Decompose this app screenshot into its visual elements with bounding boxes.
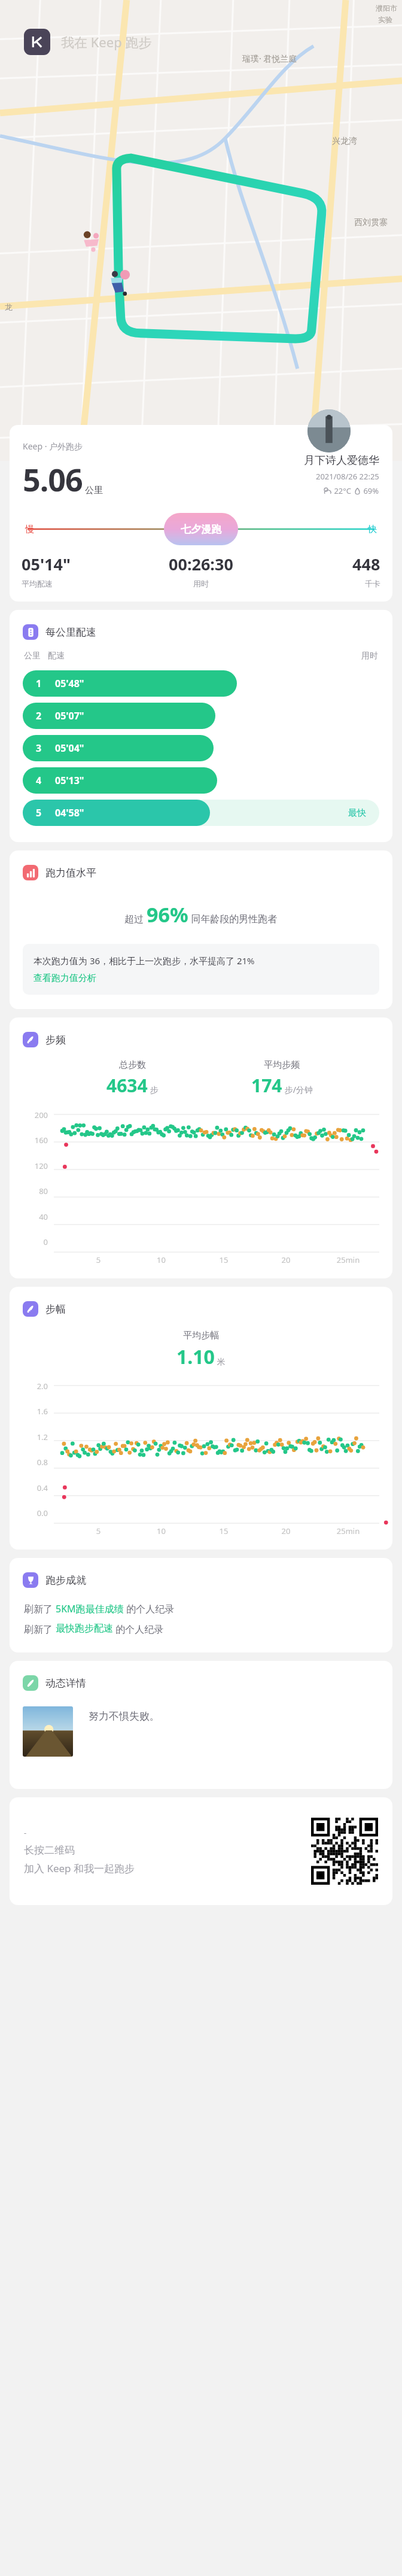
staticText: 0: [20, 1237, 48, 1247]
staticText: 跑步成就: [45, 1574, 86, 1587]
staticText: 平均步幅: [183, 1330, 219, 1341]
button[interactable]: 4: [23, 767, 379, 794]
staticText: 20: [255, 1526, 317, 1536]
button[interactable]: 刷新了: [24, 1602, 175, 1615]
staticText: 4: [36, 774, 42, 787]
other: 步幅: [23, 1301, 38, 1317]
button[interactable]: 刷新了: [24, 1623, 164, 1636]
staticText: 努力不惧失败。: [89, 1710, 160, 1723]
staticText: 平均步频: [264, 1059, 300, 1071]
button[interactable]: 5: [23, 800, 379, 826]
button[interactable]: 3: [23, 735, 379, 761]
staticText: 40: [20, 1211, 48, 1222]
staticText: 千卡: [365, 579, 380, 588]
staticText: 25min: [317, 1526, 379, 1536]
staticText: 25min: [317, 1254, 379, 1265]
staticText: 步频: [45, 1034, 66, 1046]
other: 步频: [23, 1032, 38, 1047]
staticText: 平均配速: [22, 579, 53, 588]
staticText: 5: [36, 806, 42, 819]
staticText: 配速: [48, 651, 65, 661]
staticText: 1: [36, 677, 42, 690]
button[interactable]: QR code: [311, 1818, 378, 1885]
staticText: 濮阳市: [376, 4, 397, 13]
staticText: 80: [20, 1186, 48, 1196]
staticText: 最快: [348, 807, 366, 819]
staticText: 05'04": [55, 742, 84, 755]
staticText: 3: [36, 742, 42, 755]
staticText: 七夕漫跑: [181, 523, 221, 536]
other: 跑步成就: [23, 1572, 38, 1588]
staticText: 步幅: [45, 1303, 66, 1316]
staticText: 加入 Keep 和我一起跑步: [24, 1861, 135, 1875]
staticText: 总步数: [119, 1059, 146, 1071]
staticText: 5: [67, 1526, 130, 1536]
staticText: 米: [215, 1356, 226, 1367]
button[interactable]: 动态详情: [23, 1675, 392, 1691]
staticText: 西刘贯寨: [354, 217, 388, 228]
staticText: 用时: [193, 579, 209, 588]
staticText: 每公里配速: [45, 626, 96, 639]
staticText: 实验: [378, 15, 392, 24]
staticText: 刷新了: [24, 1623, 56, 1636]
button[interactable]: 1: [23, 670, 379, 697]
other: 动态详情: [23, 1675, 38, 1691]
staticText: 最快跑步配速: [56, 1623, 113, 1635]
staticText: 96%: [147, 901, 188, 928]
staticText: 刷新了: [24, 1602, 56, 1615]
staticText: 月下诗人爱德华: [304, 454, 379, 467]
staticText: 1.10: [176, 1344, 215, 1370]
staticText: 174: [251, 1073, 282, 1098]
staticText: 00:26:30: [169, 553, 233, 575]
staticText: 快: [368, 524, 377, 535]
staticText: 10: [130, 1254, 193, 1265]
staticText: 我在 Keep 跑步: [61, 33, 152, 51]
staticText: 1.2: [20, 1432, 48, 1442]
staticText: 2021/08/26 22:25: [316, 471, 379, 482]
staticText: 2: [36, 709, 42, 722]
staticText: 05'13": [55, 774, 84, 787]
button[interactable]: 步幅: [23, 1301, 392, 1317]
staticText: 同年龄段的男性跑者: [188, 912, 278, 925]
staticText: 公里: [85, 485, 103, 496]
staticText: 15: [193, 1254, 255, 1265]
staticText: 瑞璞· 君悦兰庭: [242, 53, 297, 64]
staticText: 用时: [361, 651, 378, 661]
staticText: 22°C: [332, 485, 354, 496]
staticText: 本次跑力值为 36，相比于上一次跑步，水平提高了 21%: [33, 955, 255, 967]
staticText: 448: [352, 553, 380, 575]
staticText: 动态详情: [45, 1677, 86, 1690]
staticText: 公里: [24, 651, 41, 661]
staticText: 200: [20, 1110, 48, 1120]
staticText: 查看跑力值分析: [33, 973, 96, 984]
button[interactable]: 跑步成就: [23, 1572, 392, 1588]
staticText: 的个人纪录: [113, 1623, 164, 1636]
button[interactable]: User avatar: [307, 409, 351, 452]
staticText: 05'07": [55, 709, 84, 722]
staticText: 04'58": [55, 806, 84, 819]
staticText: 2.0: [20, 1381, 48, 1392]
other: 每公里配速: [23, 624, 38, 640]
button[interactable]: 每公里配速: [23, 624, 392, 640]
staticText: 步/分钟: [282, 1084, 313, 1095]
button[interactable]: 跑力值水平: [23, 865, 392, 880]
staticText: 160: [20, 1135, 48, 1146]
staticText: 长按二维码: [24, 1844, 75, 1857]
button[interactable]: 查看跑力值分析: [33, 973, 96, 984]
staticText: Keep · 户外跑步: [23, 441, 83, 452]
staticText: 5KM跑最佳成绩: [56, 1602, 124, 1615]
staticText: 10: [130, 1526, 193, 1536]
button[interactable]: 步频: [23, 1032, 392, 1047]
staticText: 69%: [361, 485, 379, 496]
staticText: -: [24, 1827, 27, 1838]
staticText: 龙: [5, 302, 13, 312]
staticText: 05'14": [22, 553, 71, 575]
button[interactable]: 2: [23, 703, 379, 729]
button[interactable]: 七夕漫跑: [164, 513, 238, 545]
staticText: 5.06: [23, 458, 83, 500]
staticText: 20: [255, 1254, 317, 1265]
staticText: 4634: [106, 1073, 148, 1098]
button[interactable]: 努力不惧失败。: [23, 1706, 392, 1757]
staticText: 兴龙湾: [332, 136, 357, 147]
staticText: 步: [148, 1084, 159, 1095]
